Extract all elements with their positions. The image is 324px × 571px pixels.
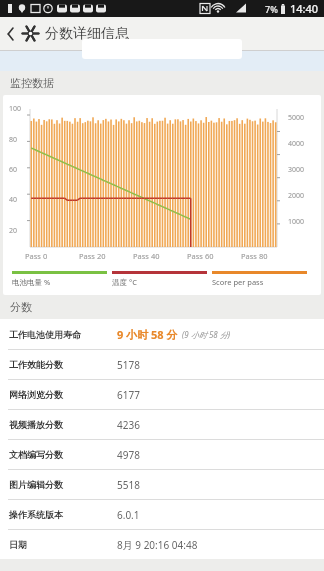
button[interactable]: 日期 <box>0 530 324 559</box>
button[interactable]: 文档编写分数 <box>0 440 324 469</box>
staticText: 操作系统版本 <box>9 509 117 520</box>
button[interactable]: Back <box>0 17 22 50</box>
staticText: 60 <box>9 165 18 175</box>
button[interactable]: 视频播放分数 <box>0 410 324 439</box>
staticText: 6.0.1 <box>117 508 140 522</box>
staticText: 1000 <box>288 217 305 227</box>
staticText: 9 小时 58 分 <box>117 327 178 342</box>
staticText: 5000 <box>288 113 305 123</box>
staticText: 5518 <box>117 478 140 492</box>
staticText: Pass 20 <box>79 251 106 261</box>
staticText: 网络浏览分数 <box>9 389 117 400</box>
staticText: 文档编写分数 <box>9 449 117 460</box>
staticText: 40 <box>9 195 18 205</box>
staticText: 8月 9 20:16 04:48 <box>117 538 198 552</box>
staticText: 温度 °C <box>112 277 137 287</box>
staticText: 分数 <box>10 300 32 314</box>
button[interactable]: 网络浏览分数 <box>0 380 324 409</box>
staticText: 2000 <box>288 191 305 201</box>
staticText: 20 <box>9 226 18 236</box>
staticText: 图片编辑分数 <box>9 479 117 490</box>
staticText: 3000 <box>288 165 305 175</box>
staticText: 分数详细信息 <box>45 25 129 43</box>
staticText: 4236 <box>117 418 140 432</box>
staticText: 14:40 <box>290 1 319 16</box>
staticText: 4978 <box>117 448 140 462</box>
button[interactable]: 工作效能分数 <box>0 350 324 379</box>
button[interactable]: 工作电池使用寿命 <box>0 319 324 349</box>
staticText: (9 小时 58 分) <box>182 329 231 340</box>
staticText: 5178 <box>117 358 140 372</box>
staticText: 工作效能分数 <box>9 359 117 370</box>
staticText: Pass 40 <box>133 251 160 261</box>
staticText: 80 <box>9 135 18 145</box>
button[interactable]: 操作系统版本 <box>0 500 324 529</box>
staticText: Score per pass <box>212 277 264 287</box>
staticText: 电池电量 % <box>12 277 51 287</box>
button[interactable]: 图片编辑分数 <box>0 470 324 499</box>
staticText: 日期 <box>9 539 117 550</box>
staticText: 视频播放分数 <box>9 419 117 430</box>
staticText: 6177 <box>117 388 140 402</box>
staticText: Pass 60 <box>187 251 214 261</box>
staticText: 监控数据 <box>10 76 54 90</box>
staticText: 4000 <box>288 139 305 149</box>
staticText: Pass 0 <box>25 251 48 261</box>
staticText: 7% <box>265 3 278 15</box>
staticText: 工作电池使用寿命 <box>9 329 117 340</box>
staticText: 100 <box>9 104 22 114</box>
staticText: Pass 80 <box>241 251 268 261</box>
